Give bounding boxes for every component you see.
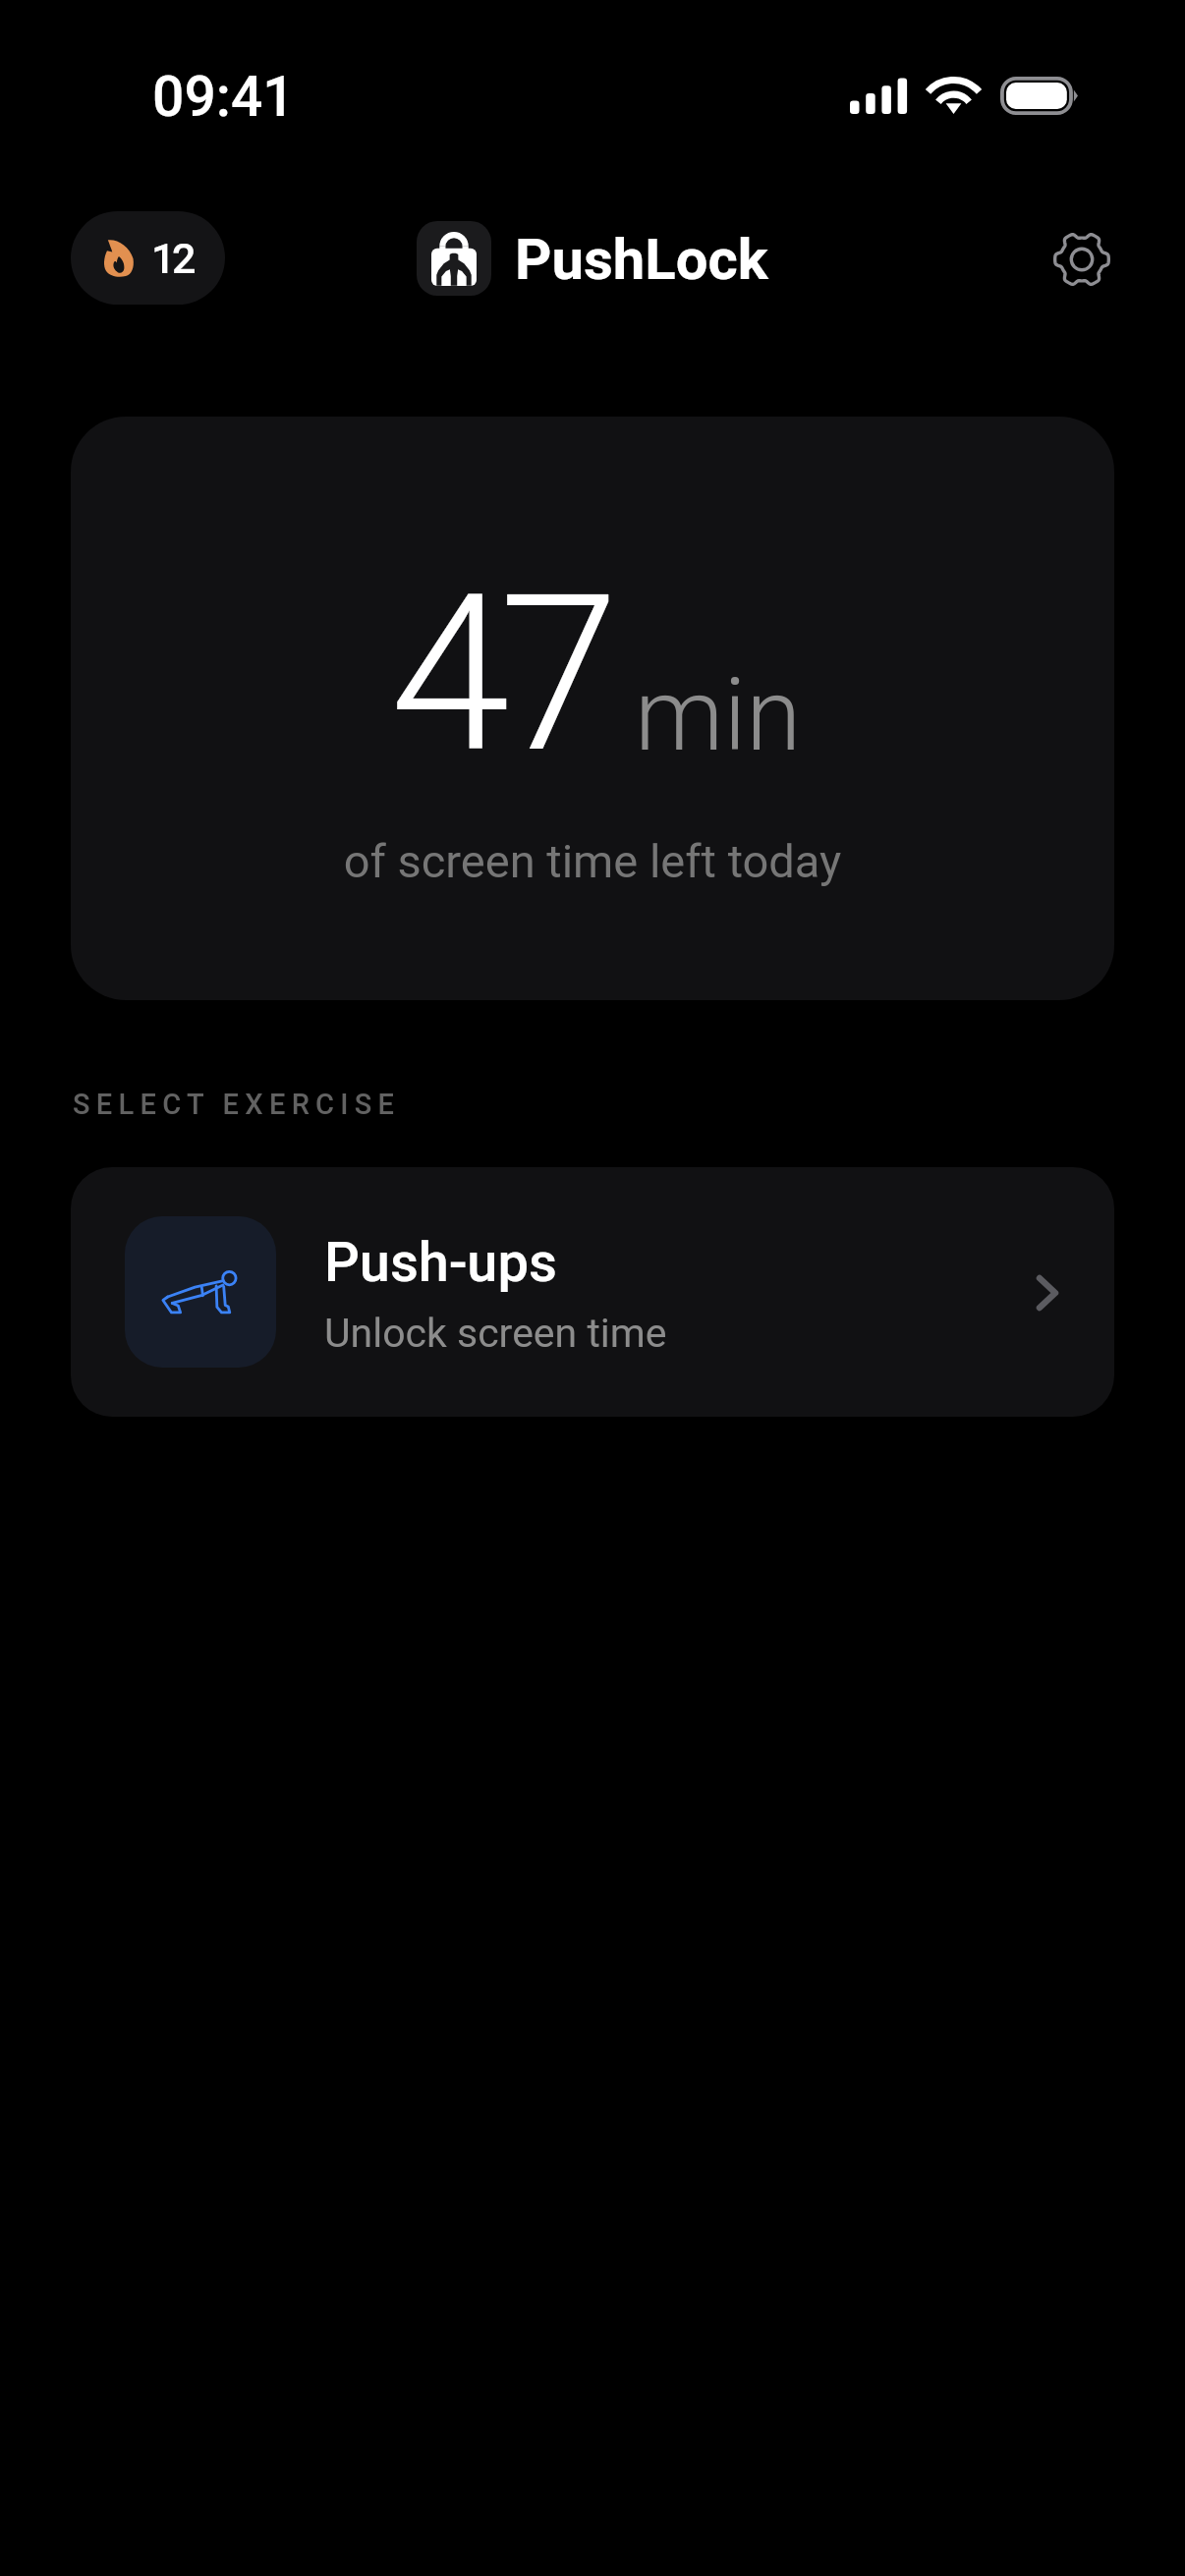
button[interactable]: Settings <box>1028 205 1136 313</box>
button[interactable]: 12 <box>71 211 225 305</box>
staticText: Unlock screen time <box>324 1310 667 1357</box>
staticText: SELECT EXERCISE <box>73 1088 401 1121</box>
staticText: min <box>635 656 802 774</box>
staticText: PushLock <box>515 226 768 293</box>
staticText: Push-ups <box>324 1230 557 1295</box>
staticText: of screen time left today <box>71 834 1114 888</box>
staticText: 47 <box>390 548 609 802</box>
staticText: 09:41 <box>152 64 295 130</box>
staticText: 12 <box>151 234 193 283</box>
button[interactable]: Push-ups <box>71 1167 1114 1417</box>
